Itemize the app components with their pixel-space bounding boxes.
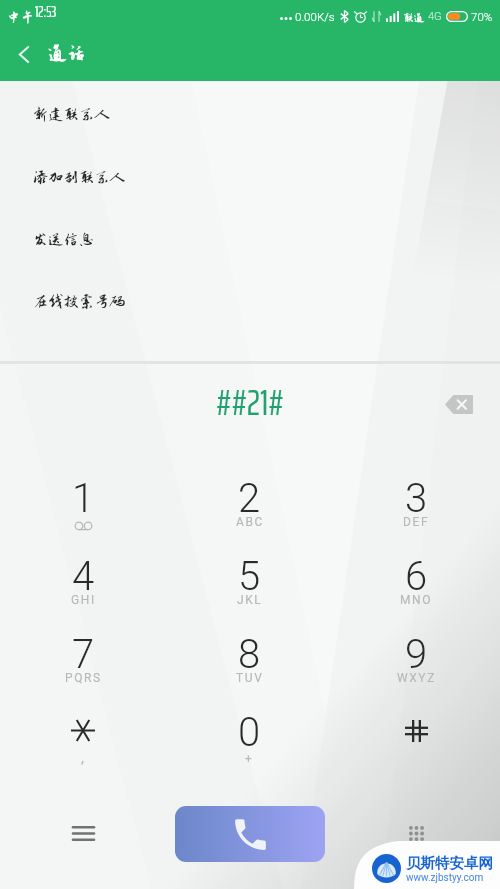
staticText: , bbox=[81, 749, 86, 767]
button[interactable]: 1 bbox=[0, 457, 166, 535]
staticText: WXYZ bbox=[397, 671, 436, 685]
staticText: 贝斯特安卓网 bbox=[406, 854, 493, 872]
staticText: 1 bbox=[72, 475, 95, 522]
button[interactable]: 8 bbox=[166, 613, 333, 691]
button[interactable]: Call bbox=[175, 806, 325, 862]
button[interactable]: 6 bbox=[333, 535, 500, 613]
button[interactable]: 9 bbox=[333, 613, 500, 691]
button[interactable]: 7 bbox=[0, 613, 166, 691]
staticText: + bbox=[245, 752, 254, 766]
button[interactable]: 2 bbox=[166, 457, 333, 535]
staticText: 4G bbox=[428, 10, 442, 23]
staticText: 发送信息 bbox=[33, 231, 95, 248]
staticText: 新建联系人 bbox=[33, 106, 110, 123]
staticText: 中午 bbox=[7, 10, 35, 25]
button[interactable]: Keypad bbox=[333, 790, 500, 877]
staticText: PQRS bbox=[65, 671, 102, 685]
button[interactable]: Call log menu bbox=[0, 790, 166, 877]
button[interactable]: 5 bbox=[166, 535, 333, 613]
staticText: 6 bbox=[405, 553, 428, 600]
staticText: JKL bbox=[237, 593, 263, 607]
button[interactable]: 3 bbox=[333, 457, 500, 535]
button[interactable]: 新建联系人 bbox=[0, 83, 500, 146]
staticText: 8 bbox=[238, 631, 261, 678]
staticText: 7 bbox=[72, 631, 95, 678]
staticText: 12:53 bbox=[35, 1, 57, 24]
staticText: 70% bbox=[471, 10, 493, 23]
staticText: 联通 bbox=[403, 11, 425, 23]
staticText: DEF bbox=[403, 515, 430, 529]
staticText: 0 bbox=[238, 709, 261, 756]
staticText: MNO bbox=[400, 593, 433, 607]
staticText: 0.00K/s bbox=[295, 10, 335, 23]
button[interactable] bbox=[333, 691, 500, 769]
staticText: 3 bbox=[405, 475, 428, 522]
staticText: ABC bbox=[236, 515, 264, 529]
button[interactable]: Back bbox=[0, 32, 48, 81]
button[interactable]: 添加到联系人 bbox=[0, 146, 500, 208]
button[interactable]: 4 bbox=[0, 535, 166, 613]
staticText: www.zjbstyy.com bbox=[406, 872, 484, 884]
staticText: ##21# bbox=[216, 374, 284, 431]
button[interactable]: 在线搜索号码 bbox=[0, 270, 500, 332]
staticText: 通话 bbox=[48, 43, 86, 64]
staticText: 5 bbox=[238, 553, 261, 600]
button[interactable]: 0 bbox=[166, 691, 333, 769]
staticText: 9 bbox=[405, 631, 428, 678]
staticText: 2 bbox=[238, 475, 261, 522]
button[interactable]: 发送信息 bbox=[0, 208, 500, 270]
button[interactable]: Delete bbox=[437, 382, 481, 426]
staticText: TUV bbox=[236, 671, 264, 685]
staticText: GHI bbox=[71, 593, 96, 607]
button[interactable]: , bbox=[0, 691, 166, 769]
staticText: 4 bbox=[72, 553, 95, 600]
staticText: 在线搜索号码 bbox=[33, 293, 125, 310]
staticText: 添加到联系人 bbox=[33, 169, 125, 186]
